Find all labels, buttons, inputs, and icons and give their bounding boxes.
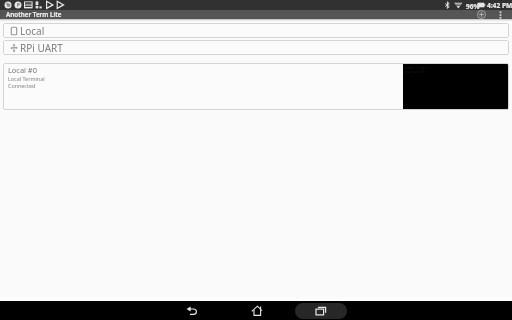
button[interactable]: RPi UART xyxy=(3,40,509,55)
staticText: rasp login: password: xyxy=(404,65,432,75)
staticText: Local xyxy=(20,24,45,38)
button[interactable]: Add session xyxy=(472,10,490,19)
button[interactable]: Back xyxy=(178,301,206,320)
button[interactable]: Local #0 xyxy=(3,63,509,110)
button[interactable]: More options xyxy=(494,10,507,19)
staticText: Another Term Lite xyxy=(6,10,62,19)
staticText: Local #0 xyxy=(8,65,37,75)
button[interactable]: Local xyxy=(3,23,509,38)
staticText: 96% xyxy=(466,2,480,11)
staticText: Connected xyxy=(8,82,36,89)
button[interactable]: Recent apps xyxy=(295,303,347,319)
staticText: 4:42 PM xyxy=(487,1,512,10)
button[interactable]: Home xyxy=(243,301,271,320)
staticText: RPi UART xyxy=(20,41,63,55)
staticText: Local Terminal xyxy=(8,75,45,82)
